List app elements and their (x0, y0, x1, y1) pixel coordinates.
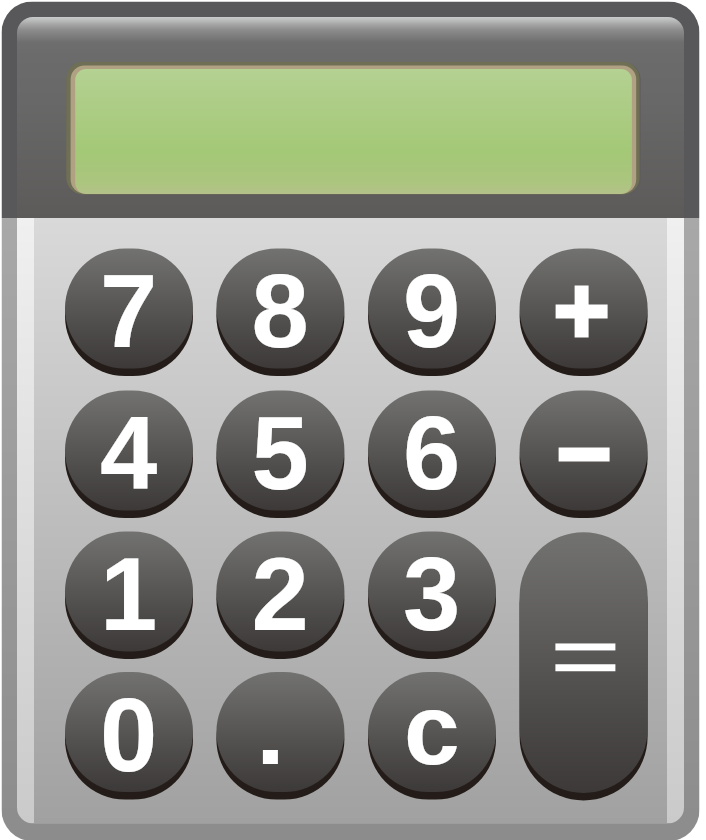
button[interactable]: Six (368, 391, 496, 511)
button[interactable]: Four (65, 391, 193, 511)
button[interactable]: Nine (368, 249, 496, 369)
button[interactable]: Eight (216, 249, 344, 369)
button[interactable]: One (65, 531, 193, 651)
button[interactable]: Seven (65, 249, 193, 369)
button[interactable]: Plus (520, 249, 648, 369)
button[interactable]: Zero (65, 672, 193, 792)
button[interactable]: Decimal point (216, 672, 344, 792)
button[interactable]: Minus (520, 391, 648, 511)
button[interactable]: Two (216, 531, 344, 651)
button[interactable]: Three (368, 531, 496, 651)
button[interactable]: Five (216, 391, 344, 511)
button[interactable]: Clear (368, 672, 496, 792)
button[interactable]: Equals (520, 532, 648, 793)
